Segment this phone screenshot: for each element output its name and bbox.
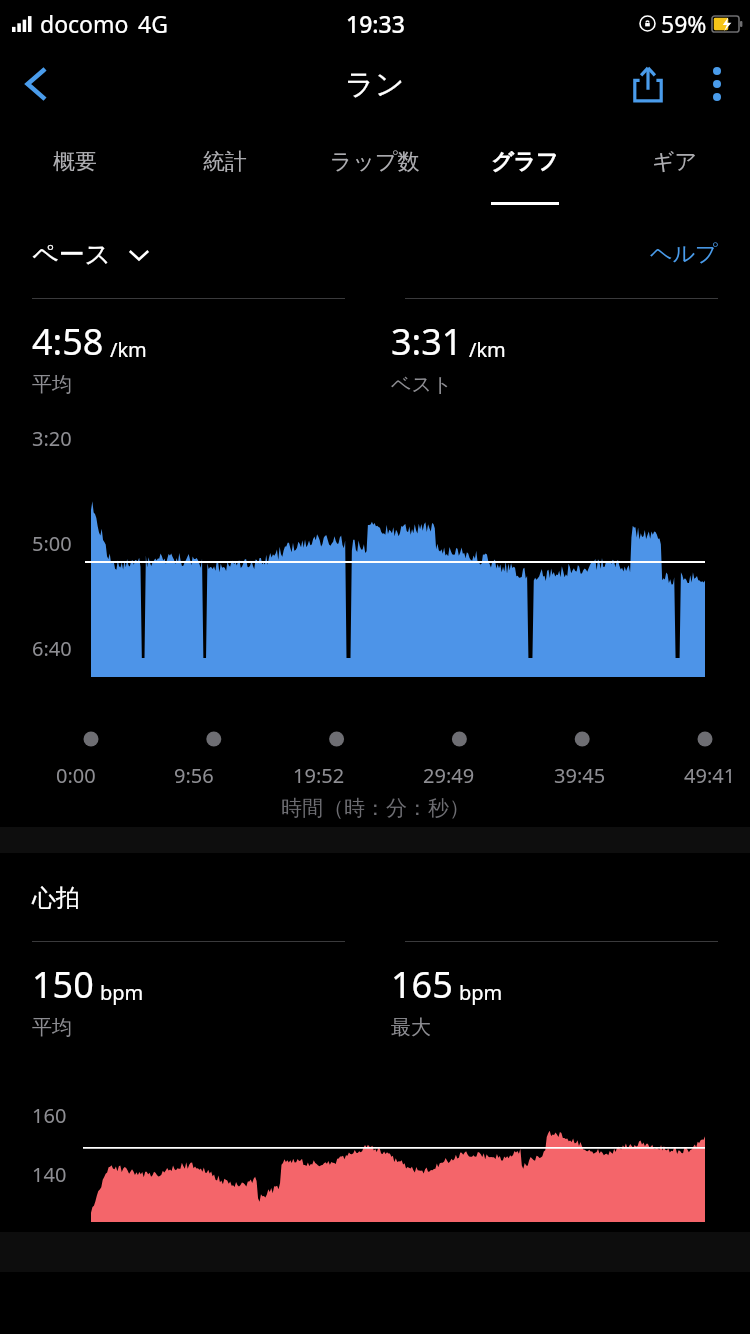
staticText: 概要 [53, 148, 97, 176]
staticText: 統計 [203, 148, 247, 176]
staticText: bpm [459, 979, 503, 1006]
staticText: 心拍 [32, 883, 80, 913]
staticText: ヘルプ [650, 240, 718, 268]
staticText: 9:56 [174, 762, 214, 789]
staticText: 3:31 [391, 317, 463, 366]
button[interactable]: Share [612, 48, 684, 120]
staticText: 最大 [391, 1015, 431, 1040]
staticText: bpm [100, 979, 144, 1006]
staticText: 時間（時：分：秒） [281, 795, 470, 821]
staticText: 140 [32, 1161, 67, 1188]
staticText: 19:52 [293, 762, 345, 789]
staticText: docomo [40, 8, 129, 39]
staticText: 0:00 [56, 762, 96, 789]
staticText: /km [469, 336, 506, 363]
button[interactable]: More options [684, 51, 750, 117]
staticText: 160 [32, 1102, 67, 1129]
button[interactable]: Back [0, 48, 72, 120]
staticText: 49:41 [684, 762, 736, 789]
staticText: ラップ数 [330, 148, 420, 176]
button[interactable]: グラフ [450, 122, 600, 214]
button[interactable]: 統計 [150, 122, 300, 214]
staticText: 平均 [32, 1015, 72, 1040]
staticText: 19:33 [346, 8, 405, 39]
staticText: 59% [661, 8, 707, 39]
button[interactable]: 概要 [0, 122, 150, 214]
staticText: 29:49 [423, 762, 475, 789]
staticText: グラフ [491, 148, 559, 176]
staticText: /km [110, 336, 147, 363]
staticText: ペース [32, 238, 112, 271]
staticText: ギア [652, 148, 698, 176]
staticText: 165 [391, 960, 453, 1009]
staticText: 5:00 [32, 530, 72, 557]
staticText: 150 [32, 960, 94, 1009]
staticText: 3:20 [32, 425, 72, 452]
staticText: ベスト [391, 372, 453, 397]
button[interactable]: ラップ数 [300, 122, 450, 214]
staticText: 39:45 [554, 762, 606, 789]
staticText: 4G [138, 8, 168, 39]
staticText: 6:40 [32, 635, 72, 662]
button[interactable]: ヘルプ [650, 240, 718, 268]
staticText: 4:58 [32, 317, 104, 366]
button[interactable]: ギア [600, 122, 750, 214]
button[interactable]: ペース [32, 238, 150, 271]
staticText: ラン [345, 66, 405, 103]
staticText: 平均 [32, 372, 72, 397]
